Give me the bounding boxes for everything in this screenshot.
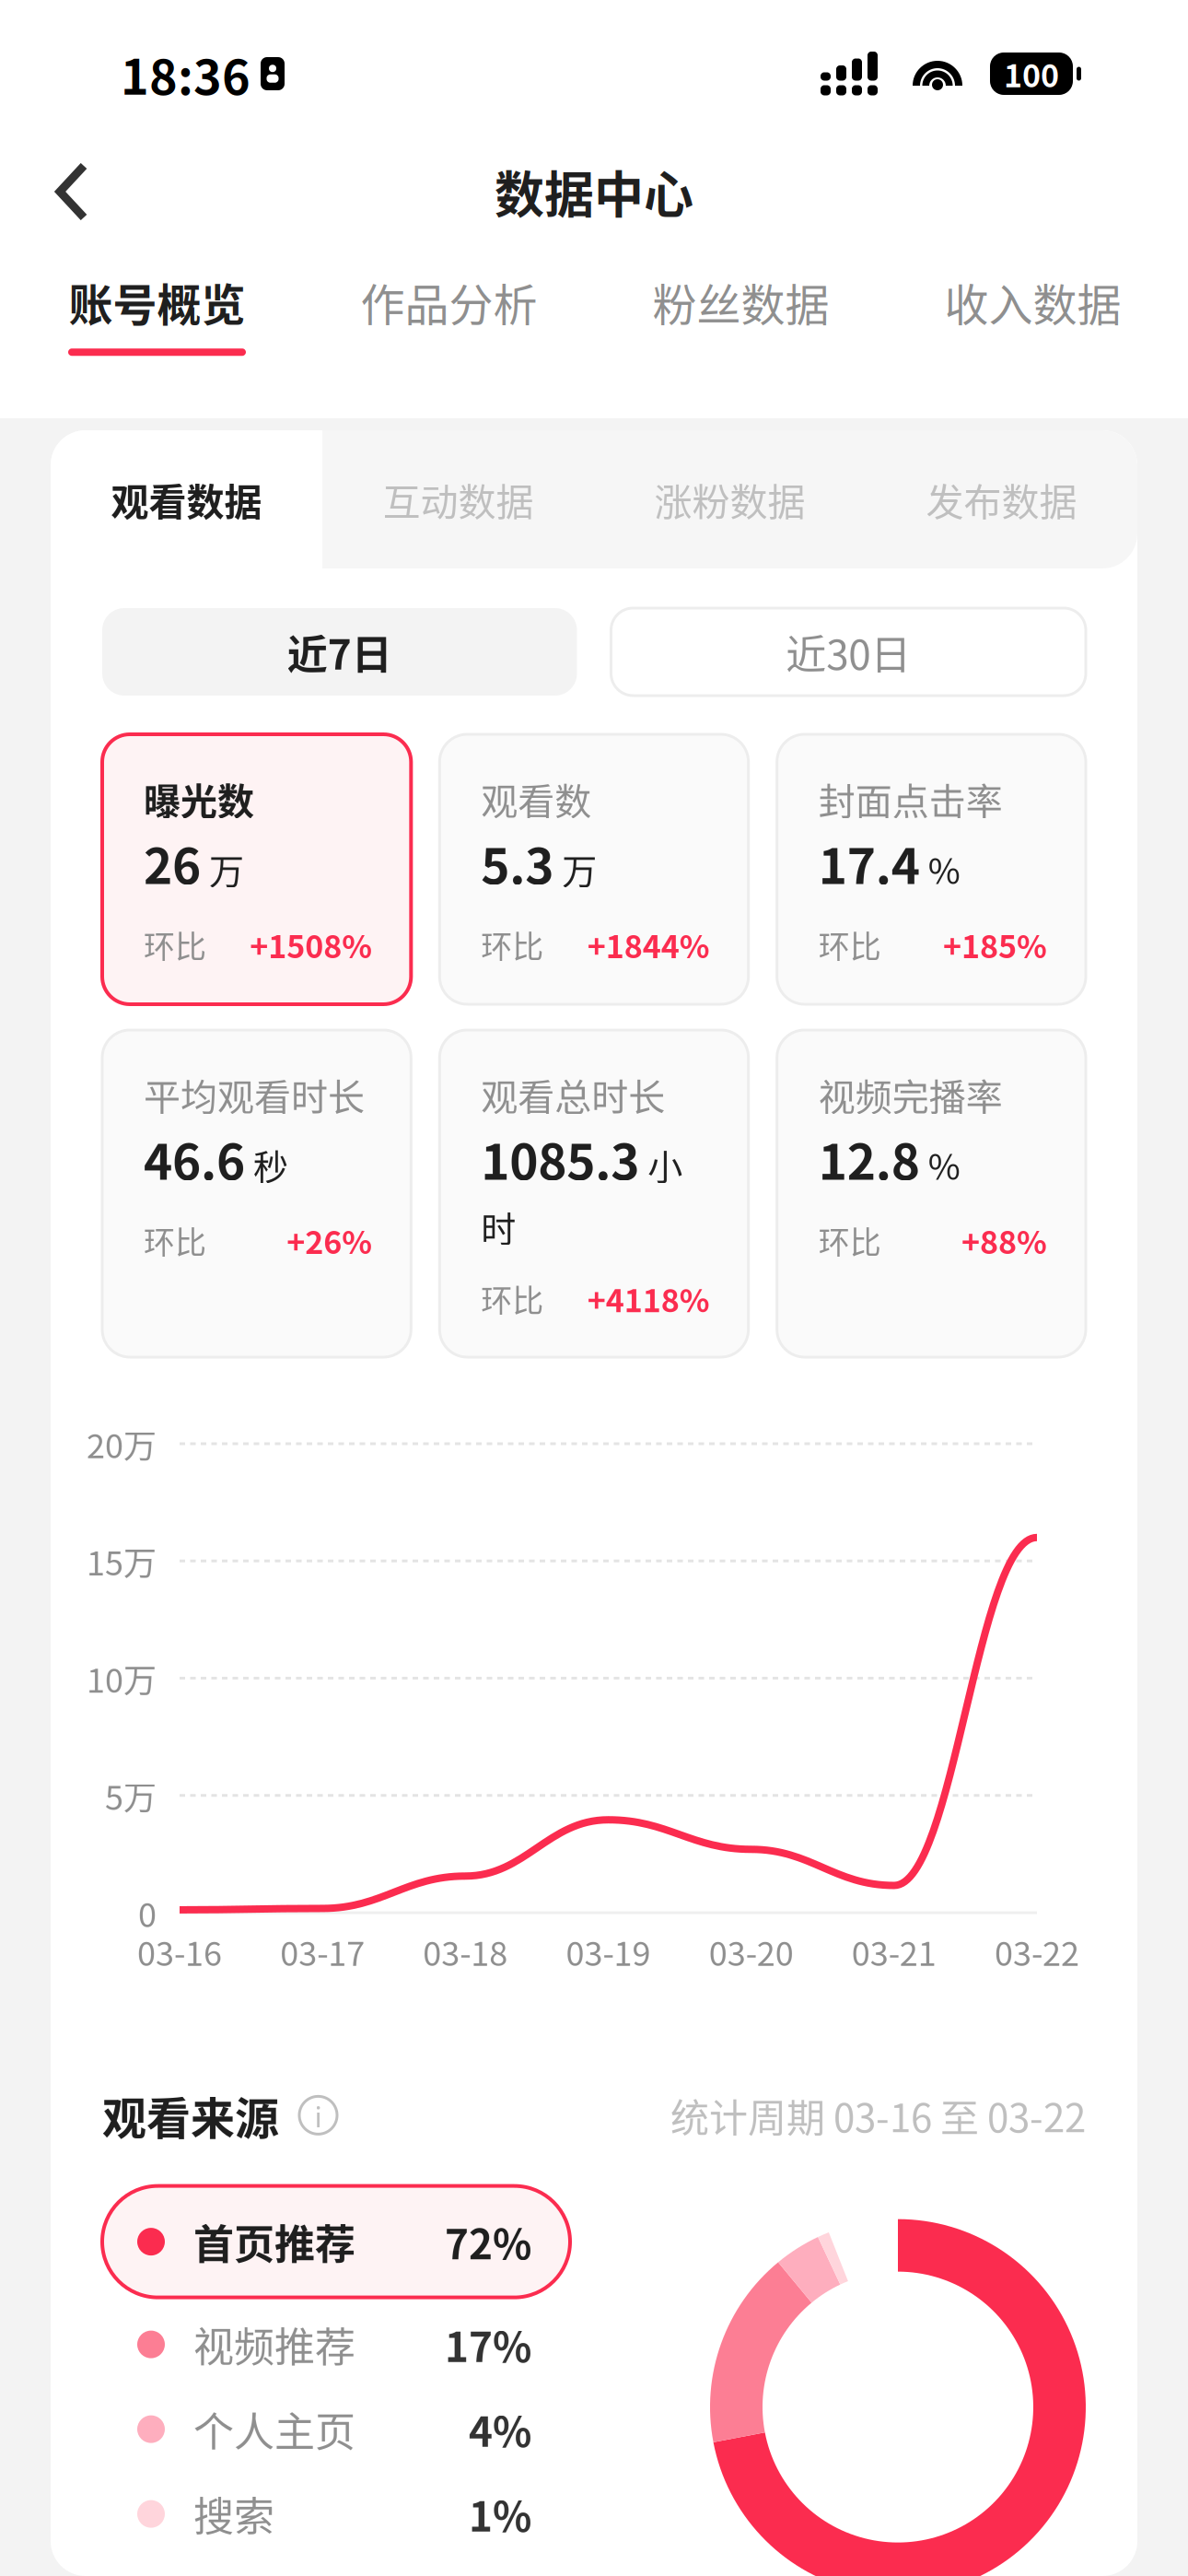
staticText: 平均观看时长 [144, 1068, 365, 1121]
staticText: 环比 [144, 922, 206, 967]
staticText: +1508% [250, 922, 372, 967]
staticText: 观看来源 [102, 2083, 279, 2147]
staticText: 26 [144, 827, 201, 898]
staticText: 5.3 [481, 827, 554, 898]
button[interactable]: 搜索 [102, 2472, 570, 2556]
staticText: 观看数据 [111, 472, 262, 527]
staticText: 账号概览 [69, 270, 245, 334]
staticText: 个人主页 [193, 2400, 355, 2459]
staticText: 1% [469, 2485, 531, 2543]
staticText: 数据中心 [495, 156, 693, 228]
button[interactable]: 粉丝数据 [595, 270, 887, 384]
staticText: 03-17 [280, 1927, 365, 1975]
button[interactable]: 发布数据 [866, 430, 1137, 568]
button[interactable]: 观看数据 [51, 430, 322, 568]
staticText: +1844% [587, 922, 710, 967]
button[interactable]: 曝光数 [102, 734, 411, 1004]
staticText: +185% [943, 922, 1047, 967]
staticText: 发布数据 [926, 472, 1077, 527]
button[interactable]: 作品分析 [303, 270, 595, 384]
staticText: i [314, 2095, 322, 2135]
staticText: 17.4 [818, 827, 920, 898]
button[interactable]: 收入数据 [887, 270, 1179, 384]
staticText: 环比 [144, 1218, 206, 1263]
staticText: 视频推荐 [193, 2315, 355, 2374]
staticText: 收入数据 [944, 270, 1121, 334]
staticText: 搜索 [193, 2485, 274, 2543]
staticText: 环比 [818, 922, 881, 967]
staticText: 观看数 [481, 772, 592, 825]
staticText: 12.8 [818, 1123, 920, 1194]
button[interactable]: 近30日 [611, 608, 1086, 696]
staticText: 18:36 [121, 39, 250, 108]
staticText: 46.6 [144, 1123, 245, 1194]
staticText: 17% [445, 2315, 531, 2374]
staticText: +88% [961, 1218, 1047, 1263]
button[interactable]: 互动数据 [322, 430, 594, 568]
staticText: 环比 [481, 1276, 544, 1321]
staticText: 1085.3 [481, 1123, 639, 1194]
staticText: % [928, 1139, 960, 1190]
button[interactable]: 观看总时长 [440, 1030, 748, 1357]
staticText: 万 [209, 843, 244, 894]
staticText: 72% [445, 2212, 531, 2271]
staticText: 20万 [87, 1420, 157, 1468]
staticText: 03-19 [566, 1927, 651, 1975]
staticText: 4% [469, 2400, 531, 2459]
staticText: 封面点击率 [818, 772, 1003, 825]
staticText: 小 [648, 1139, 683, 1190]
staticText: 10万 [87, 1654, 157, 1702]
staticText: 近7日 [287, 622, 392, 681]
staticText: 互动数据 [383, 472, 534, 527]
button[interactable]: 平均观看时长 [102, 1030, 411, 1357]
button[interactable]: 观看数 [440, 734, 748, 1004]
staticText: 视频完播率 [818, 1068, 1003, 1121]
staticText: 03-22 [995, 1927, 1079, 1975]
button[interactable]: 视频推荐 [102, 2302, 570, 2387]
button[interactable]: 视频完播率 [777, 1030, 1086, 1357]
staticText: 涨粉数据 [654, 472, 805, 527]
staticText: 观看总时长 [481, 1068, 665, 1121]
staticText: 作品分析 [361, 270, 537, 334]
button[interactable]: 涨粉数据 [594, 430, 866, 568]
staticText: 0 [138, 1889, 157, 1937]
button[interactable]: 首页推荐 [102, 2186, 570, 2297]
button[interactable]: 账号概览 [11, 270, 303, 384]
staticText: 曝光数 [144, 772, 254, 825]
staticText: +4118% [587, 1276, 710, 1321]
staticText: 万 [562, 843, 597, 894]
staticText: 5万 [105, 1772, 157, 1820]
staticText: 粉丝数据 [652, 270, 829, 334]
staticText: % [928, 843, 960, 894]
staticText: 秒 [253, 1139, 288, 1190]
staticText: 近30日 [786, 622, 911, 681]
button[interactable]: 封面点击率 [777, 734, 1086, 1004]
staticText: 03-18 [423, 1927, 508, 1975]
staticText: 03-21 [852, 1927, 936, 1975]
staticText: 时 [481, 1201, 516, 1252]
staticText: 100 [1004, 51, 1059, 96]
staticText: 15万 [87, 1537, 157, 1585]
button[interactable]: 个人主页 [102, 2387, 570, 2472]
staticText: +26% [287, 1218, 372, 1263]
button[interactable]: 近7日 [102, 608, 577, 696]
staticText: 首页推荐 [193, 2212, 355, 2271]
staticText: 03-20 [709, 1927, 794, 1975]
button[interactable]: Back [26, 135, 118, 249]
staticText: 环比 [481, 922, 544, 967]
staticText: 统计周期 03-16 至 03-22 [670, 2087, 1086, 2143]
staticText: 03-16 [137, 1927, 222, 1975]
staticText: 环比 [818, 1218, 881, 1263]
